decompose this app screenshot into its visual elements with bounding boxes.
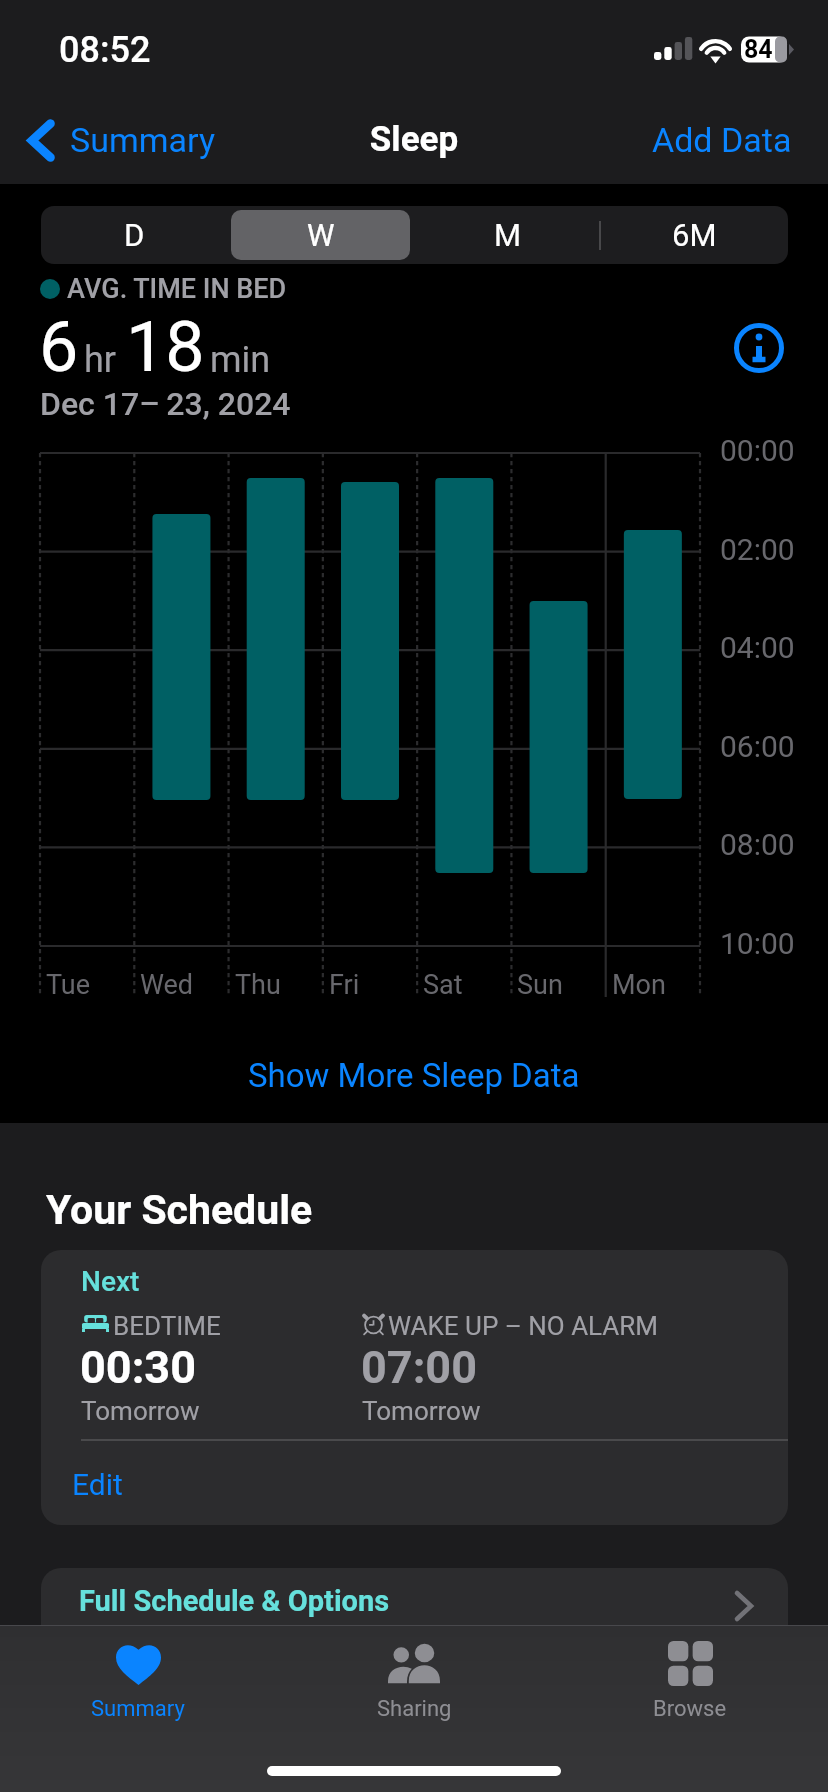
staticText: Tue <box>46 969 91 1001</box>
staticText: 08:52 <box>59 29 151 71</box>
button[interactable]: M <box>418 210 597 260</box>
staticText: W <box>307 217 335 253</box>
staticText: Fri <box>329 969 360 1001</box>
staticText: Full Schedule & Options <box>79 1584 390 1618</box>
button[interactable]: Edit <box>41 1441 788 1525</box>
staticText: Mon <box>612 969 666 1001</box>
staticText: Your Schedule <box>46 1186 313 1234</box>
staticText: D <box>124 217 145 253</box>
button[interactable]: Information <box>734 323 784 373</box>
staticText: 00:30 <box>80 1341 196 1394</box>
button[interactable]: W <box>231 210 410 260</box>
staticText: 00:00 <box>720 433 795 468</box>
staticText: 06:00 <box>720 729 795 764</box>
button[interactable]: Show More Sleep Data <box>0 1035 828 1115</box>
button[interactable]: Summary <box>27 108 215 172</box>
staticText: Sleep <box>0 119 828 160</box>
staticText: Sharing <box>377 1696 452 1722</box>
staticText: Tomorrow <box>81 1396 200 1426</box>
button[interactable]: Browse <box>552 1625 828 1792</box>
staticText: 10:00 <box>720 926 795 961</box>
staticText: 04:00 <box>720 630 795 665</box>
staticText: M <box>494 217 522 253</box>
staticText: Dec 17– 23, 2024 <box>40 385 291 423</box>
staticText: 84 <box>744 35 773 64</box>
staticText: Edit <box>72 1467 123 1502</box>
staticText: 07:00 <box>361 1341 477 1394</box>
staticText: Show More Sleep Data <box>248 1056 580 1095</box>
staticText: 6M <box>672 217 717 253</box>
staticText: AVG. TIME IN BED <box>67 273 287 305</box>
staticText: 6 <box>39 306 79 388</box>
staticText: 08:00 <box>720 827 795 862</box>
staticText: 02:00 <box>720 532 795 567</box>
staticText: hr <box>84 339 117 381</box>
staticText: Add Data <box>652 120 792 160</box>
staticText: BEDTIME <box>113 1311 221 1341</box>
button[interactable]: Sharing <box>276 1625 552 1792</box>
staticText: Thu <box>235 969 281 1001</box>
staticText: Browse <box>653 1696 727 1722</box>
staticText: WAKE UP – NO ALARM <box>388 1311 659 1341</box>
staticText: Sun <box>517 969 563 1001</box>
button[interactable]: Add Data <box>600 108 792 172</box>
button[interactable]: Summary <box>0 1625 276 1792</box>
button[interactable]: 6M <box>605 210 784 260</box>
staticText: Tomorrow <box>362 1396 481 1426</box>
staticText: Next <box>81 1265 140 1298</box>
staticText: Summary <box>70 120 215 160</box>
staticText: Wed <box>140 969 194 1001</box>
button[interactable]: D <box>45 210 223 260</box>
staticText: Sat <box>423 969 463 1001</box>
staticText: 18 <box>126 306 205 388</box>
button[interactable]: Full Schedule & Options <box>41 1568 788 1688</box>
staticText: Summary <box>91 1696 185 1722</box>
staticText: min <box>210 339 271 381</box>
